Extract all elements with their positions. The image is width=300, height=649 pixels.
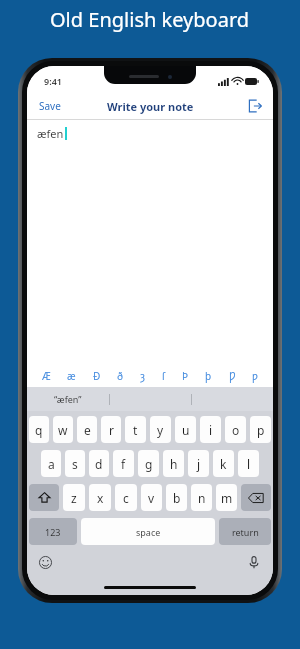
staticText: Write your note [107,99,194,114]
staticText: v [148,490,155,506]
staticText: æ [67,369,76,383]
staticText: e [84,422,91,438]
staticText: x [97,490,104,506]
button[interactable]: Ð [90,366,104,386]
button[interactable]: y [150,416,171,443]
staticText: p [257,422,265,438]
staticText: space [136,526,161,538]
staticText: æfen [37,126,64,141]
button[interactable]: u [175,416,196,443]
staticText: þ [205,369,212,383]
button[interactable]: x [89,484,111,511]
button[interactable]: z [63,484,85,511]
button[interactable]: w [53,416,73,443]
staticText: g [145,456,153,472]
button[interactable]: 123 [29,518,77,545]
button[interactable]: k [213,450,234,477]
staticText: f [121,456,126,472]
staticText: “æfen” [54,393,82,405]
staticText: 123 [45,526,61,538]
staticText: Old English keyboard [50,6,250,33]
button[interactable]: t [125,416,146,443]
button[interactable]: ð [114,366,127,386]
button[interactable]: b [166,484,187,511]
button[interactable]: i [200,416,221,443]
button[interactable]: space [81,518,215,545]
button[interactable]: ȝ [137,366,148,386]
button[interactable]: j [188,450,209,477]
button[interactable]: p [250,416,271,443]
staticText: return [232,526,259,538]
staticText: ȝ [140,369,145,383]
staticText: m [221,490,233,506]
staticText: ð [117,369,124,383]
button[interactable]: Dictation [245,552,263,573]
staticText: d [95,456,103,472]
button[interactable]: o [225,416,246,443]
staticText: u [182,422,190,438]
button[interactable]: Emoji keyboard [35,552,56,573]
staticText: o [232,422,240,438]
staticText: 9:41 [44,75,62,87]
staticText: l [247,456,251,472]
button[interactable]: e [77,416,97,443]
button[interactable]: Export note [237,95,273,117]
button[interactable]: r [101,416,121,443]
staticText: s [72,456,78,472]
button[interactable]: æ [64,366,79,386]
button[interactable]: s [65,450,85,477]
staticText: a [48,456,55,472]
staticText: Ƿ [229,369,236,383]
staticText: Ð [93,369,101,383]
button[interactable]: g [138,450,159,477]
button[interactable]: f [113,450,134,477]
button[interactable]: v [141,484,162,511]
staticText: Save [39,99,61,113]
staticText: q [35,422,43,438]
button[interactable]: Þ [179,366,192,386]
staticText: Þ [182,369,189,383]
staticText: h [170,456,178,472]
button[interactable]: Save [27,94,73,118]
staticText: c [123,490,129,506]
staticText: z [71,490,77,506]
staticText: Æ [42,369,51,383]
button[interactable]: return [219,518,271,545]
button[interactable]: q [29,416,49,443]
staticText: t [133,422,138,438]
staticText: ſ [162,369,166,383]
staticText: k [220,456,227,472]
staticText: n [198,490,206,506]
button[interactable]: Backspace [241,484,271,511]
button[interactable]: ƿ [249,366,261,386]
button[interactable]: d [89,450,109,477]
button[interactable]: Shift [29,484,59,511]
button[interactable]: l [238,450,259,477]
button[interactable]: h [163,450,184,477]
button[interactable]: n [191,484,212,511]
button[interactable]: a [41,450,61,477]
staticText: r [109,422,114,438]
button[interactable]: Ƿ [226,366,239,386]
button[interactable]: m [216,484,237,511]
staticText: j [197,456,201,472]
staticText: i [209,422,213,438]
staticText: y [157,422,164,438]
button[interactable]: þ [202,366,215,386]
button[interactable]: ſ [159,366,169,386]
button[interactable]: “æfen” [27,387,109,411]
staticText: w [58,422,68,438]
button[interactable]: c [115,484,137,511]
staticText: ƿ [252,369,258,383]
button[interactable]: Æ [39,366,54,386]
staticText: b [173,490,181,506]
